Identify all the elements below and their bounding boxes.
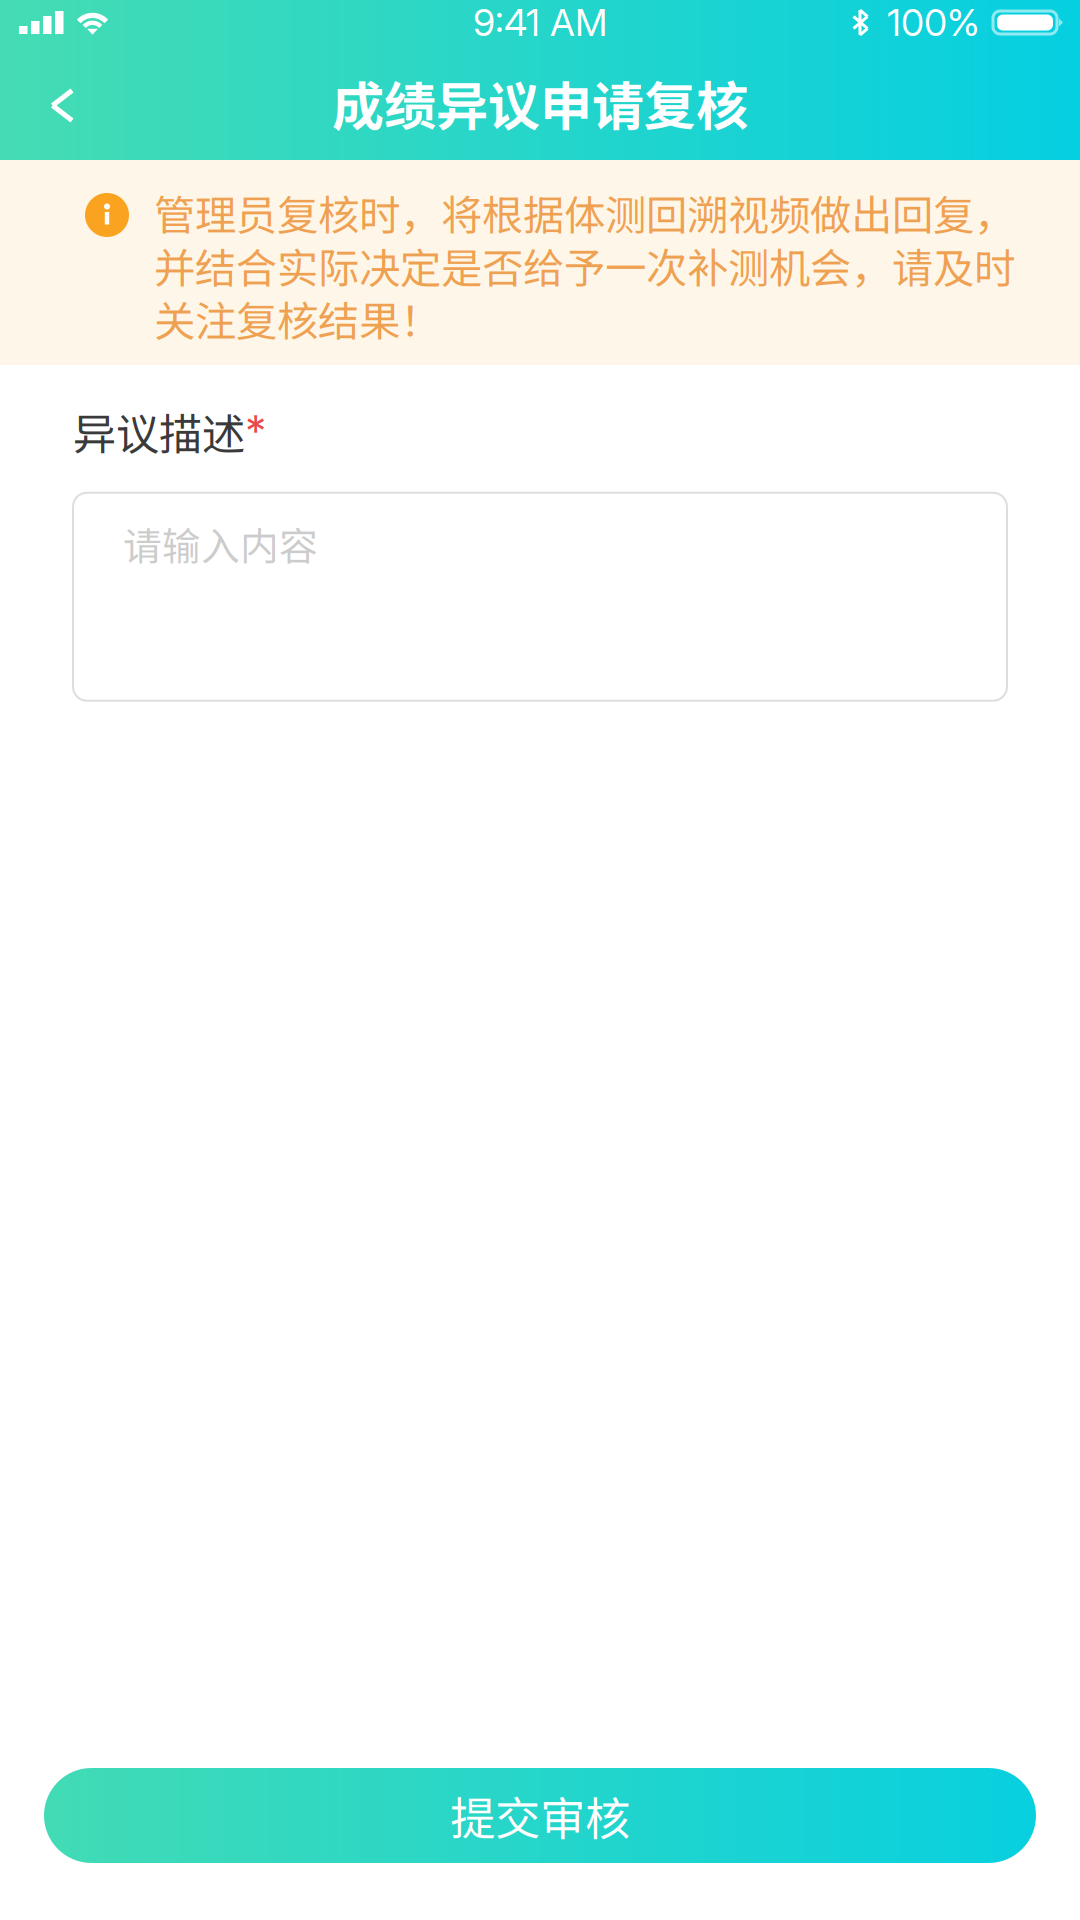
staticText: 提交审核 [450,1783,630,1848]
staticText: 异议描述 [73,400,245,463]
button[interactable]: Back [0,60,108,151]
staticText: 100% [887,0,980,45]
staticText: * [245,405,266,456]
staticText: 请输入内容 [123,516,318,572]
staticText: 管理员复核时，将根据体测回溯视频做出回复，并结合实际决定是否给予一次补测机会，请… [154,186,1015,345]
staticText: 成绩异议申请复核 [332,65,748,140]
button[interactable]: 提交审核 [44,1768,1036,1863]
staticText: 9:41 AM [473,0,607,45]
